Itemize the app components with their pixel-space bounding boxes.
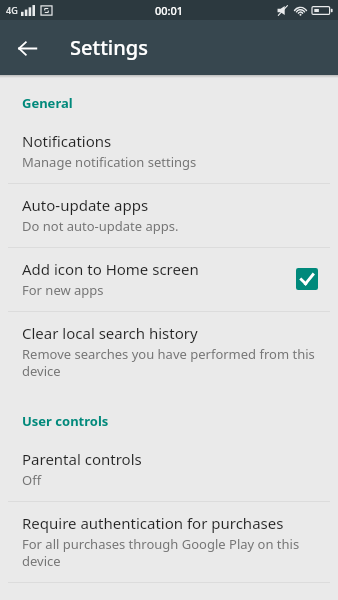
staticText: Remove searches you have performed from … bbox=[22, 345, 320, 380]
staticText: User controls bbox=[22, 412, 109, 430]
staticText: Auto-update apps bbox=[22, 195, 149, 215]
button[interactable]: Add icon to Home screen bbox=[0, 248, 338, 311]
staticText: Parental controls bbox=[22, 449, 142, 469]
staticText: 00:01 bbox=[155, 3, 184, 18]
button[interactable]: Notifications bbox=[0, 120, 338, 183]
button[interactable]: Add icon to Home screen checkbox bbox=[294, 266, 320, 292]
staticText: Manage notification settings bbox=[22, 153, 197, 171]
button[interactable]: Back bbox=[6, 27, 48, 69]
staticText: Off bbox=[22, 471, 42, 489]
staticText: Add icon to Home screen bbox=[22, 259, 199, 279]
staticText: General bbox=[22, 94, 73, 112]
staticText: Do not auto-update apps. bbox=[22, 217, 179, 235]
staticText: Settings bbox=[70, 34, 148, 61]
staticText: Notifications bbox=[22, 131, 112, 151]
staticText: Clear local search history bbox=[22, 323, 198, 343]
staticText: For all purchases through Google Play on… bbox=[22, 535, 320, 570]
staticText: Require authentication for purchases bbox=[22, 513, 284, 533]
button[interactable]: Clear local search history bbox=[0, 312, 338, 392]
button[interactable]: Parental controls bbox=[0, 438, 338, 501]
staticText: 4G bbox=[6, 4, 18, 16]
button[interactable]: Require authentication for purchases bbox=[0, 502, 338, 582]
staticText: For new apps bbox=[22, 281, 104, 299]
button[interactable]: Auto-update apps bbox=[0, 184, 338, 247]
